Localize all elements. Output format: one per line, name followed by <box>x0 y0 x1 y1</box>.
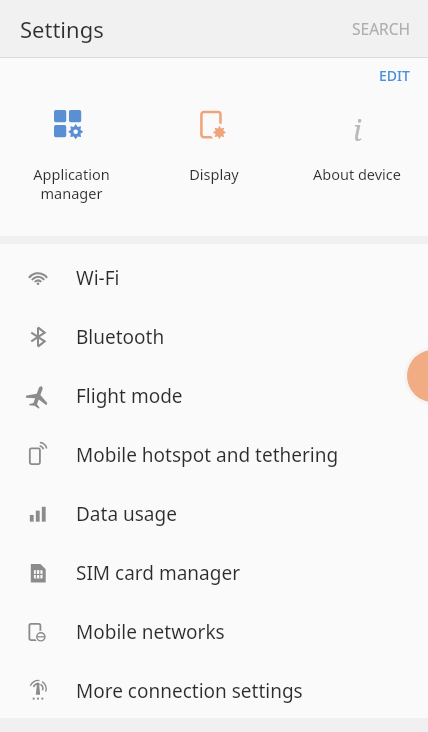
button[interactable]: More connection settings <box>0 661 428 720</box>
staticText: Data usage <box>76 501 177 527</box>
staticText: About device <box>313 164 401 184</box>
button[interactable]: Display <box>142 92 285 184</box>
button[interactable]: Quick action <box>404 347 428 405</box>
staticText: Display <box>189 164 239 184</box>
button[interactable]: EDIT <box>361 59 428 92</box>
staticText: Bluetooth <box>76 324 165 350</box>
staticText: SEARCH <box>352 18 410 39</box>
staticText: Settings <box>20 14 104 44</box>
staticText: Flight mode <box>76 383 183 409</box>
staticText: Mobile hotspot and tethering <box>76 442 339 468</box>
button[interactable]: SEARCH <box>334 4 428 53</box>
staticText: SIM card manager <box>76 560 240 586</box>
button[interactable]: Application manager <box>0 92 142 203</box>
button[interactable]: Mobile hotspot and tethering <box>0 425 428 484</box>
staticText: Wi-Fi <box>76 265 120 291</box>
button[interactable]: Flight mode <box>0 366 428 425</box>
staticText: EDIT <box>379 66 410 85</box>
staticText: Mobile networks <box>76 619 225 645</box>
button[interactable]: SIM card manager <box>0 543 428 602</box>
staticText: More connection settings <box>76 678 303 704</box>
button[interactable]: Data usage <box>0 484 428 543</box>
staticText: i <box>353 110 362 144</box>
button[interactable]: Bluetooth <box>0 307 428 366</box>
staticText: Application manager <box>33 164 110 203</box>
button[interactable]: Wi-Fi <box>0 248 428 307</box>
button[interactable]: i <box>285 92 428 184</box>
button[interactable]: Mobile networks <box>0 602 428 661</box>
